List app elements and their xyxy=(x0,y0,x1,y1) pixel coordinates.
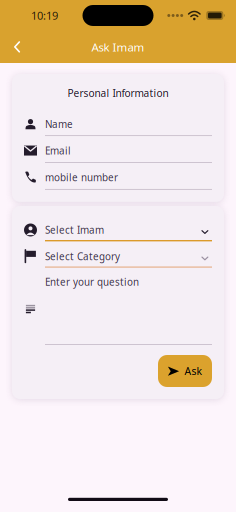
staticText: Name xyxy=(45,117,73,131)
button[interactable]: Ask xyxy=(158,355,212,387)
staticText: 10:19 xyxy=(31,8,58,23)
staticText: Email xyxy=(45,144,71,157)
staticText: mobile number xyxy=(45,171,118,184)
staticText: Enter your question xyxy=(45,275,139,288)
staticText: Ask xyxy=(184,364,202,378)
staticText: Select Category xyxy=(45,250,120,263)
button[interactable]: Back xyxy=(0,31,34,63)
staticText: Ask Imam xyxy=(91,39,144,55)
staticText: Personal Information xyxy=(67,86,168,100)
staticText: Select Imam xyxy=(45,223,104,237)
